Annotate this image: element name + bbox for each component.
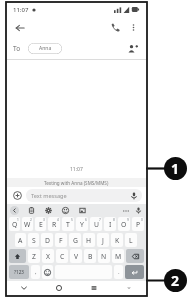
staticText: W: [24, 220, 31, 229]
button[interactable]: Voice typing: [134, 206, 143, 215]
staticText: E: [39, 220, 43, 229]
button[interactable]: S: [28, 233, 39, 247]
button[interactable]: More tools: [121, 206, 130, 215]
staticText: X: [46, 252, 50, 261]
staticText: U: [94, 220, 99, 229]
staticText: F: [59, 236, 63, 245]
button[interactable]: Clipboard: [27, 206, 36, 215]
button[interactable]: Keyboard settings: [44, 206, 53, 215]
button[interactable]: L: [125, 233, 137, 247]
staticText: B: [88, 252, 93, 261]
button[interactable]: ?123: [9, 265, 29, 279]
button[interactable]: V: [70, 249, 82, 263]
staticText: 7: [99, 218, 101, 222]
button[interactable]: J: [97, 233, 109, 247]
staticText: C: [60, 252, 65, 261]
button[interactable]: Y: [76, 217, 88, 231]
staticText: Z: [32, 252, 36, 261]
button[interactable]: Backspace: [126, 249, 144, 263]
button[interactable]: Shift: [9, 249, 26, 263]
button[interactable]: Home: [41, 281, 76, 295]
staticText: Texting with Anna (SMS/MMS): [44, 180, 109, 186]
staticText: Text message: [31, 192, 67, 200]
button[interactable]: Expand toolbar: [10, 206, 19, 215]
staticText: 11:07: [70, 166, 83, 173]
button[interactable]: I: [104, 217, 116, 231]
button[interactable]: Attach: [11, 189, 24, 202]
staticText: 2: [30, 218, 32, 222]
staticText: L: [129, 236, 133, 245]
staticText: 4: [57, 218, 59, 222]
button[interactable]: C: [56, 249, 68, 263]
button[interactable]: M: [112, 249, 124, 263]
staticText: Anna: [39, 45, 52, 52]
button[interactable]: T: [62, 217, 74, 231]
button[interactable]: W: [22, 217, 33, 231]
staticText: S: [32, 236, 36, 245]
button[interactable]: Hide keyboard: [7, 281, 41, 295]
staticText: J: [102, 236, 104, 245]
staticText: 8: [113, 218, 115, 222]
button[interactable]: B: [84, 249, 96, 263]
staticText: M: [115, 252, 122, 261]
button[interactable]: X: [42, 249, 54, 263]
staticText: R: [52, 220, 57, 229]
button[interactable]: R: [48, 217, 60, 231]
button[interactable]: K: [111, 233, 123, 247]
button[interactable]: D: [41, 233, 53, 247]
button[interactable]: Images: [78, 206, 87, 215]
staticText: 2: [171, 271, 180, 290]
staticText: I: [109, 220, 112, 229]
button[interactable]: N: [98, 249, 110, 263]
button[interactable]: Emoji: [42, 265, 53, 279]
staticText: D: [45, 236, 50, 245]
button[interactable]: Q: [9, 217, 20, 231]
staticText: N: [101, 252, 107, 261]
staticText: ,: [35, 268, 37, 276]
button[interactable]: U: [90, 217, 102, 231]
button[interactable]: Anna: [28, 43, 62, 54]
button[interactable]: A: [15, 233, 26, 247]
staticText: 9: [127, 218, 129, 222]
button[interactable]: .: [114, 265, 123, 279]
button[interactable]: H: [83, 233, 95, 247]
button[interactable]: Call: [108, 20, 123, 35]
button[interactable]: O: [118, 217, 130, 231]
staticText: To: [13, 44, 21, 53]
staticText: 1: [171, 159, 180, 178]
staticText: P: [136, 220, 141, 229]
button[interactable]: F: [55, 233, 67, 247]
button[interactable]: More options: [126, 20, 141, 35]
staticText: T: [66, 220, 70, 229]
staticText: .: [118, 268, 120, 276]
staticText: 0: [141, 218, 143, 222]
staticText: 3: [43, 218, 45, 222]
button[interactable]: Collapse: [111, 281, 146, 295]
button[interactable]: Stickers: [61, 206, 70, 215]
button[interactable]: Back: [12, 20, 27, 35]
staticText: H: [86, 236, 92, 245]
staticText: 11:07: [13, 6, 29, 14]
staticText: 5: [71, 218, 73, 222]
button[interactable]: Enter: [125, 265, 144, 279]
staticText: Y: [80, 220, 84, 229]
button[interactable]: G: [69, 233, 81, 247]
button[interactable]: ,: [31, 265, 40, 279]
staticText: K: [115, 236, 120, 245]
button[interactable]: Voice input: [129, 191, 139, 201]
button[interactable]: Text message: [26, 189, 142, 202]
staticText: A: [18, 236, 23, 245]
button[interactable]: Add contact: [125, 41, 140, 56]
staticText: V: [74, 252, 79, 261]
staticText: G: [73, 236, 78, 245]
button[interactable]: Recents: [76, 281, 111, 295]
button[interactable]: Z: [28, 249, 40, 263]
button[interactable]: P: [132, 217, 144, 231]
staticText: Q: [12, 220, 18, 229]
staticText: ?123: [14, 269, 24, 275]
staticText: O: [121, 220, 127, 229]
staticText: 1: [17, 218, 19, 222]
button[interactable]: E: [35, 217, 46, 231]
staticText: 6: [85, 218, 87, 222]
